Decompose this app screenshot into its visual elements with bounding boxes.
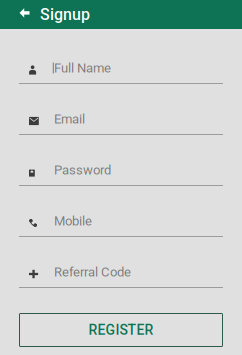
- button[interactable]: Mobile: [19, 206, 223, 237]
- button[interactable]: Referral Code: [19, 257, 223, 288]
- staticText: Mobile: [54, 213, 92, 229]
- staticText: Signup: [40, 5, 90, 24]
- staticText: REGISTER: [88, 322, 153, 338]
- button[interactable]: REGISTER: [19, 313, 223, 347]
- staticText: Email: [54, 111, 85, 127]
- staticText: Referral Code: [54, 264, 131, 280]
- staticText: Full Name: [54, 60, 111, 76]
- button[interactable]: Back: [9, 0, 40, 29]
- button[interactable]: Password: [19, 155, 223, 186]
- button[interactable]: Full Name: [19, 53, 223, 84]
- button[interactable]: Email: [19, 104, 223, 135]
- staticText: Password: [54, 162, 111, 178]
